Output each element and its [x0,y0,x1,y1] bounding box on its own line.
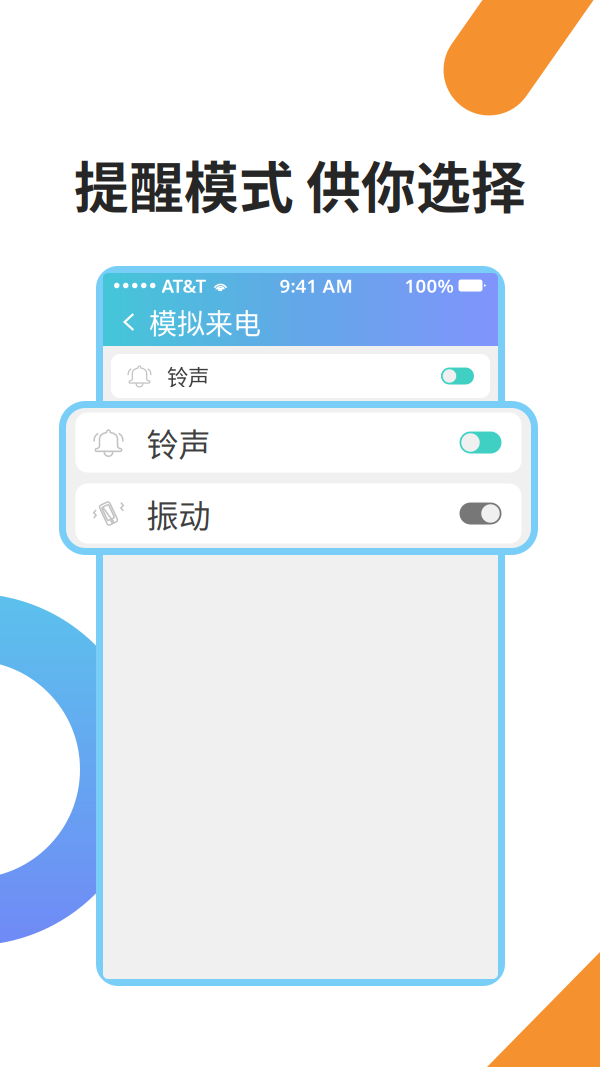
button[interactable]: Switch on [441,367,474,384]
staticText: 铃声 [167,361,209,391]
staticText: 9:41 AM [279,273,352,298]
button[interactable]: Switch on [459,431,501,453]
staticText: 提醒模式 供你选择 [74,144,526,223]
staticText: 模拟来电 [149,302,261,342]
button[interactable]: 铃声 [75,412,521,472]
button[interactable]: 铃声 [111,354,490,398]
button[interactable]: 振动 [75,483,521,543]
button[interactable]: Switch off [459,502,501,524]
staticText: AT&T [161,273,206,298]
button[interactable]: 模拟来电 [103,295,271,349]
staticText: 振动 [146,490,210,537]
staticText: 100% [404,273,453,298]
staticText: 铃声 [146,419,210,466]
